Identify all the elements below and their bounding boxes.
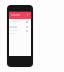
button[interactable]: Toggle	[9, 20, 31, 24]
button[interactable]	[9, 32, 31, 36]
button[interactable]: Toggle	[9, 29, 31, 33]
button[interactable]: Toggle	[9, 25, 31, 29]
button[interactable]: More options	[9, 12, 31, 19]
